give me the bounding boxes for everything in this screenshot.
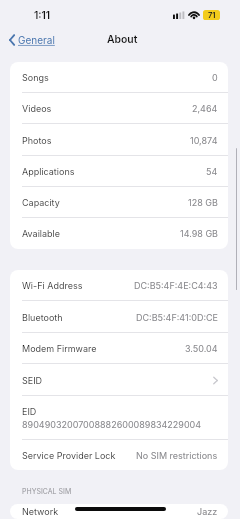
staticText: Service Provider Lock	[22, 450, 116, 461]
button[interactable]: Applications	[10, 156, 228, 187]
staticText: Photos	[22, 135, 52, 146]
button[interactable]: Modem Firmware	[10, 333, 228, 364]
button[interactable]: Bluetooth	[10, 301, 228, 333]
staticText: General	[18, 34, 55, 46]
staticText: PHYSICAL SIM	[22, 487, 72, 495]
button[interactable]: EID	[10, 396, 228, 440]
button[interactable]: General	[5, 31, 56, 49]
staticText: 71	[208, 11, 216, 20]
button[interactable]: Wi-Fi Address	[10, 270, 228, 301]
staticText: EID	[22, 406, 37, 417]
button[interactable]: Photos	[10, 124, 228, 156]
button[interactable]: Capacity	[10, 187, 228, 218]
staticText: DC:B5:4F:4E:C4:43	[134, 280, 218, 291]
staticText: Network	[22, 506, 59, 517]
staticText: Capacity	[22, 197, 60, 208]
staticText: Bluetooth	[22, 312, 63, 323]
staticText: Available	[22, 228, 61, 239]
staticText: Wi-Fi Address	[22, 280, 83, 291]
staticText: No SIM restrictions	[136, 450, 218, 461]
staticText: Songs	[22, 72, 49, 83]
button[interactable]: Available	[10, 218, 228, 249]
staticText: 89049032007008882600089834229004	[22, 419, 202, 430]
button[interactable]: Network	[10, 504, 228, 519]
staticText: 10,874	[190, 135, 218, 146]
button[interactable]: SEID	[10, 364, 228, 396]
staticText: 1:11	[34, 9, 51, 21]
staticText: 128 GB	[188, 197, 218, 208]
staticText: Modem Firmware	[22, 343, 97, 354]
button[interactable]: Songs	[10, 62, 228, 93]
staticText: Videos	[22, 103, 52, 114]
staticText: 0	[212, 72, 218, 83]
staticText: Jazz	[197, 506, 218, 517]
staticText: About	[107, 33, 138, 46]
staticText: 54	[206, 166, 218, 177]
staticText: DC:B5:4F:41:0D:CE	[136, 312, 218, 323]
staticText: SEID	[22, 375, 43, 386]
button[interactable]: Videos	[10, 93, 228, 124]
button[interactable]: Service Provider Lock	[10, 440, 228, 470]
staticText: 14.98 GB	[180, 228, 218, 239]
staticText: 3.50.04	[185, 343, 218, 354]
staticText: 2,464	[192, 103, 218, 114]
staticText: Applications	[22, 166, 75, 177]
